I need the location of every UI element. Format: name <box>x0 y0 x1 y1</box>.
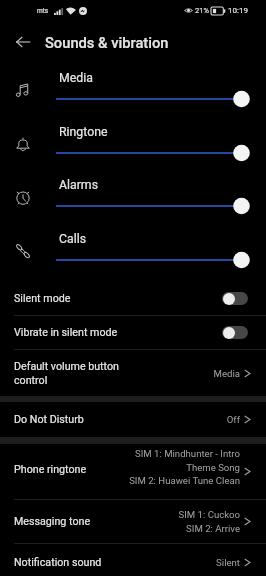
button[interactable]: Notification sound <box>0 544 266 576</box>
staticText: Do Not Disturb <box>14 413 221 426</box>
button[interactable]: Alarms <box>0 170 266 223</box>
button[interactable]: Ringtone <box>0 117 266 170</box>
button[interactable]: Vibrate in silent mode <box>0 316 266 349</box>
staticText: Vibrate in silent mode <box>14 326 222 339</box>
staticText: mts <box>37 7 49 15</box>
button[interactable]: Media <box>0 63 266 116</box>
staticText: Ringtone <box>59 125 108 139</box>
staticText: Silent mode <box>14 292 222 305</box>
button[interactable]: Phone ringtone <box>0 444 266 499</box>
staticText: 21% <box>195 6 209 15</box>
staticText: Silent <box>216 557 240 568</box>
staticText: 10:19 <box>228 6 248 15</box>
staticText: Sounds & vibration <box>45 34 169 51</box>
button[interactable]: Silent mode <box>0 281 266 315</box>
staticText: SIM 1: Mindhunter - Intro Theme Song SIM… <box>129 448 240 486</box>
button[interactable]: Messaging tone <box>0 500 266 543</box>
staticText: Off <box>226 414 240 425</box>
staticText: Media <box>213 368 240 379</box>
staticText: Notification sound <box>14 556 211 569</box>
staticText: Calls <box>59 232 87 246</box>
button[interactable]: Calls <box>0 224 266 277</box>
staticText: SIM 1: Cuckoo SIM 2: Arrive <box>178 509 240 534</box>
button[interactable]: Back <box>9 28 37 56</box>
button[interactable]: Default volume button control <box>0 350 266 396</box>
staticText: Messaging tone <box>14 515 173 528</box>
staticText: Phone ringtone <box>14 463 124 476</box>
button[interactable]: Do Not Disturb <box>0 402 266 437</box>
staticText: Default volume button control <box>14 360 208 387</box>
staticText: Media <box>59 71 93 85</box>
staticText: Alarms <box>59 178 98 192</box>
